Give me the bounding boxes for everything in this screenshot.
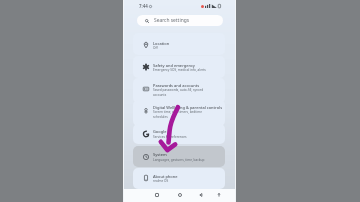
button[interactable]: Recents (151, 189, 163, 201)
button[interactable]: Hide keyboard (213, 189, 225, 201)
button[interactable] (133, 146, 225, 167)
staticText: Services & preferences (153, 135, 187, 139)
staticText: accounts (153, 93, 167, 97)
button[interactable]: Home (174, 189, 186, 201)
staticText: 7:44 (139, 3, 148, 9)
staticText: Location (153, 41, 170, 46)
button[interactable] (133, 100, 225, 126)
button[interactable]: Back (195, 189, 207, 201)
staticText: System (153, 152, 167, 157)
staticText: Languages, gestures, time, backup (153, 158, 205, 162)
staticText: Saved passwords, auto-fill, synced (153, 88, 204, 92)
staticText: Safety and emergency (153, 63, 195, 68)
staticText: schedules (153, 115, 168, 119)
staticText: Screen time, app timers, bedtime (153, 110, 202, 114)
button[interactable]: Search settings (137, 15, 223, 26)
staticText: Emergency SOS, medical info, alerts (153, 68, 206, 72)
button[interactable] (133, 78, 225, 103)
button[interactable] (133, 56, 225, 78)
button[interactable] (133, 168, 225, 189)
staticText: Digital Wellbeing & parental controls (153, 105, 223, 110)
button[interactable] (133, 33, 225, 55)
staticText: Off (153, 46, 158, 50)
staticText: Passwords and accounts (153, 83, 200, 88)
staticText: About phone (153, 174, 178, 179)
button[interactable] (133, 124, 225, 144)
staticText: Search settings (154, 17, 190, 24)
staticText: Google (153, 129, 167, 134)
staticText: realme OS (153, 179, 169, 183)
